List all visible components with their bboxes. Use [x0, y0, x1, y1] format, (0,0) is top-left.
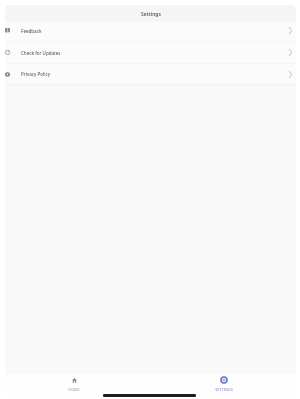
button[interactable]: HOME [24, 375, 124, 396]
staticText: Settings [141, 11, 161, 18]
other: Open [289, 49, 292, 56]
staticText: HOME [68, 387, 80, 392]
other: Open [289, 27, 292, 34]
button[interactable]: Privacy Policy [5, 64, 296, 84]
staticText: Check for Updates [21, 50, 61, 56]
button[interactable]: Feedback [5, 22, 296, 41]
other: Open [289, 71, 292, 78]
staticText: Privacy Policy [21, 71, 51, 77]
button[interactable]: SETTINGS [174, 375, 274, 396]
staticText: Feedback [21, 28, 42, 34]
button[interactable]: Check for Updates [5, 42, 296, 63]
staticText: SETTINGS [215, 387, 233, 392]
